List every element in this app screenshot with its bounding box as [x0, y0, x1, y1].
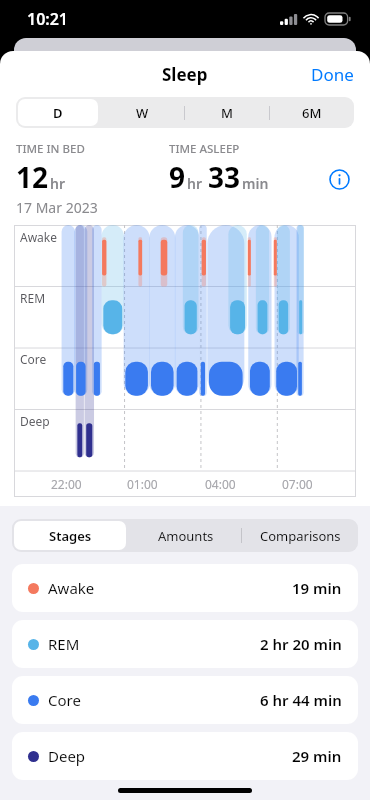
staticText: 33 — [208, 158, 241, 196]
staticText: Awake — [20, 229, 58, 245]
staticText: 17 Mar 2023 — [16, 198, 98, 217]
staticText: Stages — [49, 527, 92, 545]
button[interactable]: Information about sleep data — [322, 162, 356, 196]
button[interactable]: Stages — [14, 521, 126, 550]
staticText: 29 min — [292, 746, 342, 766]
staticText: Deep — [20, 413, 50, 429]
button[interactable]: REM — [12, 620, 358, 668]
staticText: TIME ASLEEP — [169, 141, 240, 157]
staticText: 10:21 — [27, 8, 69, 30]
staticText: 2 hr 20 min — [260, 634, 342, 654]
staticText: 01:00 — [127, 476, 158, 492]
staticText: M — [221, 104, 233, 122]
staticText: REM — [20, 290, 46, 306]
button[interactable]: Amounts — [130, 521, 241, 550]
staticText: Core — [20, 351, 47, 367]
staticText: Done — [311, 63, 354, 86]
staticText: TIME IN BED — [16, 141, 85, 157]
button[interactable]: W — [102, 99, 182, 126]
staticText: 22:00 — [51, 476, 82, 492]
staticText: hr — [187, 174, 203, 193]
staticText: 07:00 — [282, 476, 313, 492]
staticText: 12 — [16, 158, 49, 196]
button[interactable]: M — [186, 99, 267, 126]
button[interactable]: D — [18, 99, 98, 126]
staticText: REM — [48, 634, 80, 654]
staticText: Awake — [48, 578, 95, 598]
staticText: 9 — [169, 158, 186, 196]
staticText: Deep — [48, 746, 86, 766]
staticText: 6 hr 44 min — [260, 690, 342, 710]
staticText: hr — [50, 174, 66, 193]
staticText: Amounts — [158, 527, 214, 545]
button[interactable]: 6M — [271, 99, 352, 126]
button[interactable]: Core — [12, 676, 358, 724]
staticText: W — [136, 104, 149, 122]
staticText: Core — [48, 690, 81, 710]
staticText: D — [53, 104, 63, 122]
staticText: Comparisons — [260, 527, 341, 545]
button[interactable]: Awake — [12, 564, 358, 612]
staticText: 19 min — [292, 578, 342, 598]
button[interactable]: Done — [295, 54, 370, 95]
staticText: Sleep — [162, 63, 208, 86]
staticText: 6M — [302, 104, 322, 122]
button[interactable]: Comparisons — [245, 521, 356, 550]
staticText: 04:00 — [205, 476, 236, 492]
staticText: min — [242, 174, 269, 193]
button[interactable]: Deep — [12, 732, 358, 780]
